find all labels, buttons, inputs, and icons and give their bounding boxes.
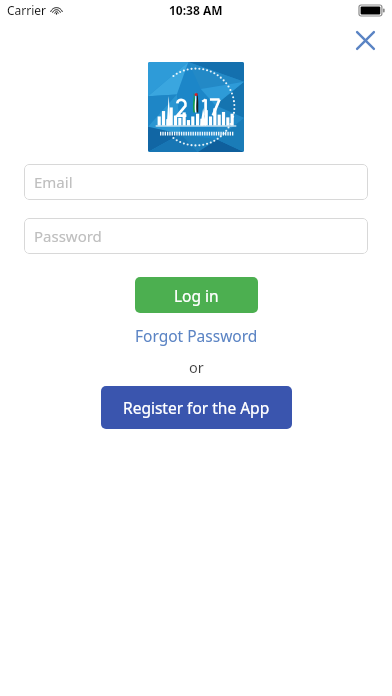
staticText: Password: [34, 226, 102, 246]
button[interactable]: Log in: [135, 277, 258, 313]
staticText: Log in: [174, 285, 219, 306]
button[interactable]: Close: [348, 23, 382, 57]
staticText: Carrier: [7, 2, 47, 18]
staticText: Email: [34, 172, 73, 192]
staticText: Forgot Password: [135, 325, 258, 346]
button[interactable]: Email: [24, 164, 368, 200]
staticText: or: [189, 357, 204, 377]
staticText: Register for the App: [123, 397, 270, 418]
staticText: 10:38 AM: [169, 2, 223, 18]
button[interactable]: Password: [24, 218, 368, 254]
button[interactable]: Register for the App: [101, 386, 292, 429]
button[interactable]: Forgot Password: [125, 322, 268, 349]
